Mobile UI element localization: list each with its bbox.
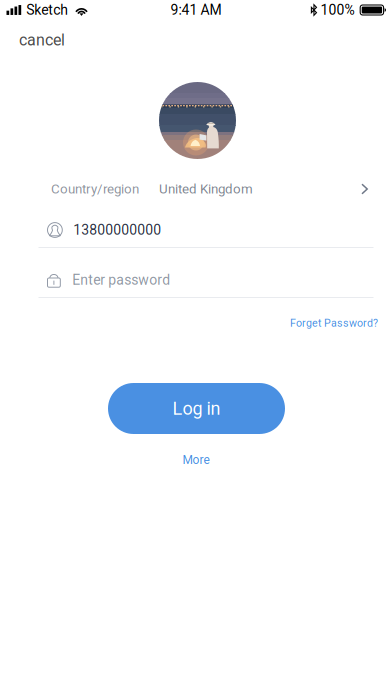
staticText: Enter password [72, 272, 170, 288]
staticText: Forget Password? [290, 317, 378, 329]
button[interactable]: cancel [0, 26, 89, 54]
button[interactable]: More [166, 450, 226, 470]
staticText: More [182, 453, 209, 467]
button[interactable]: Country/region [0, 176, 392, 202]
button[interactable]: Forget Password? [268, 312, 378, 334]
staticText: Country/region [51, 181, 139, 197]
staticText: United Kingdom [159, 181, 253, 197]
staticText: Sketch [26, 2, 68, 18]
staticText: 9:41 AM [170, 2, 221, 18]
button[interactable]: Log in [108, 383, 285, 434]
staticText: Log in [172, 398, 220, 419]
staticText: 100% [321, 2, 355, 18]
staticText: cancel [19, 31, 65, 49]
staticText: 13800000000 [73, 222, 161, 238]
